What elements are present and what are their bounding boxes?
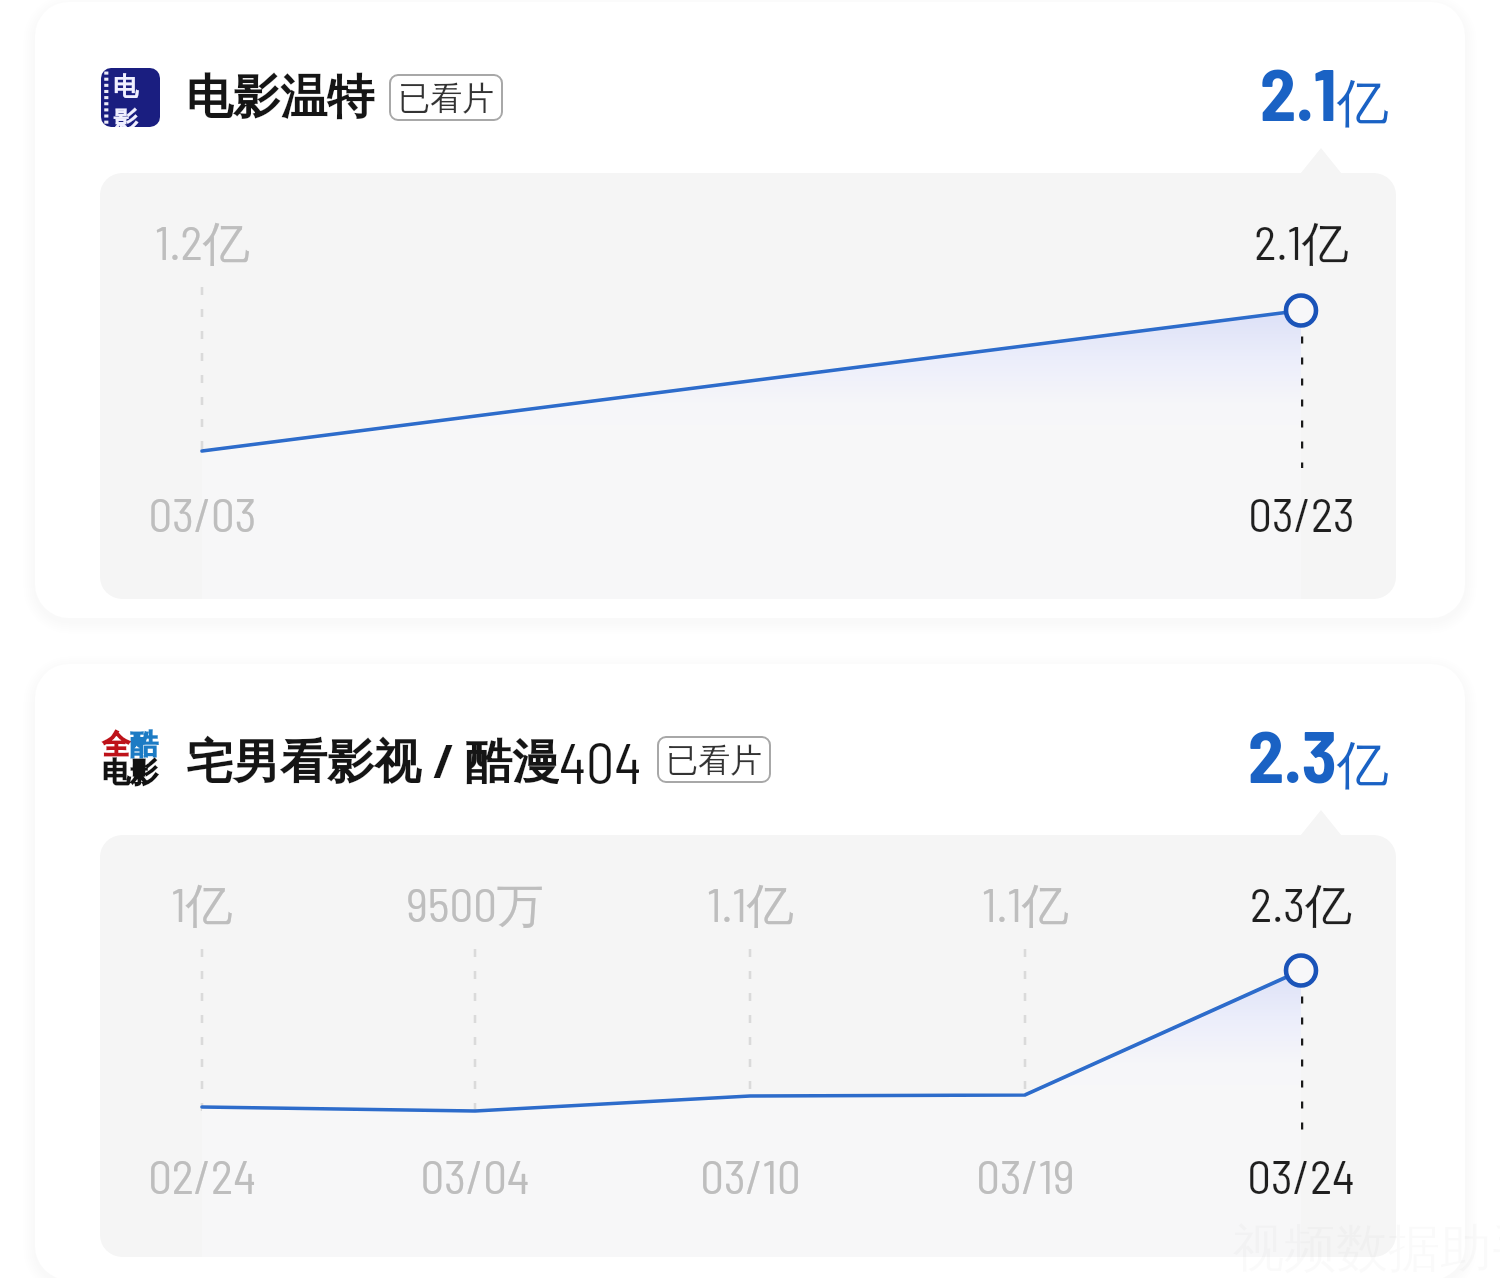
button[interactable]: 电影温特 app icon (35, 2, 1465, 618)
staticText: 02/24 (148, 1147, 256, 1203)
staticText: 1.1亿 (982, 875, 1069, 936)
staticText: 电影温特 (186, 68, 374, 127)
staticText: 1.1亿 (707, 875, 794, 936)
staticText: 9500万 (406, 875, 544, 936)
staticText: 2.1亿 (1254, 213, 1349, 274)
staticText: 03/19 (976, 1147, 1075, 1203)
staticText: 03/23 (1248, 485, 1355, 541)
staticText: 03/24 (1247, 1147, 1355, 1203)
staticText: 1.2亿 (155, 213, 250, 274)
other: 全酷电影 app icon (101, 730, 160, 789)
staticText: 电影 (113, 71, 159, 127)
staticText: 亿 (1337, 733, 1389, 799)
staticText: 电影 (102, 755, 158, 790)
staticText: 03/03 (148, 485, 257, 541)
button[interactable]: 全酷电影 app icon (35, 664, 1465, 1278)
button[interactable]: 全酷电影 app icon (101, 728, 771, 790)
staticText: 03/10 (700, 1147, 801, 1203)
staticText: 全 (102, 727, 130, 762)
staticText: 宅男看影视 / 酷漫 (186, 728, 559, 790)
staticText: 2.1 (1260, 49, 1337, 135)
button[interactable]: 电影温特 app icon (101, 66, 503, 128)
staticText: 03/04 (420, 1147, 530, 1203)
staticText: 视频数据助手 (1232, 1216, 1500, 1278)
staticText: 亿 (1337, 71, 1389, 137)
staticText: 酷 (130, 727, 158, 762)
staticText: 404 (559, 728, 642, 790)
staticText: 2.3亿 (1250, 875, 1352, 936)
staticText: 1亿 (171, 875, 233, 936)
staticText: 已看片 (398, 78, 494, 118)
other: 电影温特 app icon (101, 68, 160, 127)
staticText: 已看片 (666, 740, 762, 780)
staticText: 2.3 (1248, 711, 1337, 797)
